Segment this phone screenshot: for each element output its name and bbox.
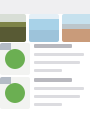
button[interactable]: Beach photo (62, 14, 90, 42)
button[interactable]: Lake photo (29, 14, 59, 42)
button[interactable] (0, 76, 90, 110)
button[interactable] (0, 42, 90, 76)
button[interactable]: Meadow photo (0, 14, 26, 42)
